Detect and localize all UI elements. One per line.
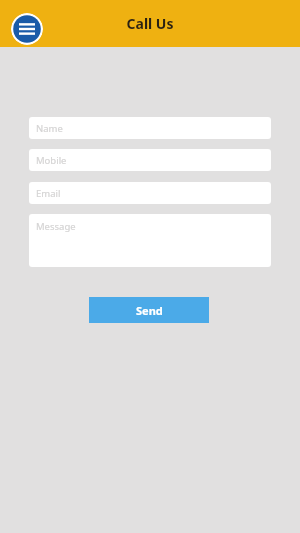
staticText: Send bbox=[136, 303, 163, 318]
button[interactable]: Mobile bbox=[29, 149, 271, 171]
button[interactable]: Open navigation menu bbox=[11, 13, 43, 45]
staticText: Mobile bbox=[36, 154, 67, 167]
staticText: Call Us bbox=[0, 14, 300, 33]
staticText: Message bbox=[36, 220, 76, 233]
button[interactable]: Send bbox=[89, 297, 209, 323]
button[interactable]: Email bbox=[29, 182, 271, 204]
button[interactable]: Name bbox=[29, 117, 271, 139]
staticText: Email bbox=[36, 187, 61, 200]
staticText: Name bbox=[36, 122, 63, 135]
button[interactable]: Message bbox=[29, 214, 271, 267]
